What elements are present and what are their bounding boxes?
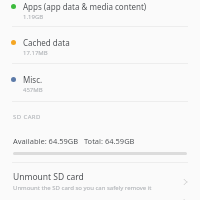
staticText: Cached data [23, 37, 70, 48]
staticText: Apps (app data & media content) [23, 1, 147, 12]
staticText: SD CARD [13, 113, 41, 121]
staticText: Misc. [23, 74, 43, 85]
staticText: Unmount SD card [13, 171, 84, 183]
button[interactable]: Misc. [0, 74, 200, 94]
staticText: 457MB [23, 86, 43, 94]
staticText: Unmount the SD card so you can safely re… [13, 184, 152, 192]
other: Unmount SD card [180, 177, 190, 187]
button[interactable]: Apps (app data & media content) [0, 1, 200, 21]
staticText: Available: 64.59GB Total: 64.59GB [13, 136, 135, 146]
staticText: 1.19GB [23, 13, 44, 21]
button[interactable]: Unmount SD card [0, 171, 200, 192]
button[interactable]: Cached data [0, 37, 200, 57]
staticText: 17.17MB [23, 49, 48, 57]
